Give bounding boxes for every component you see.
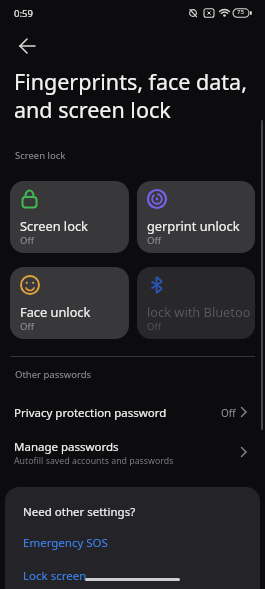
staticText: Privacy protection password [14, 405, 167, 421]
button[interactable] [10, 34, 46, 60]
button[interactable]: gerprint unlock [137, 181, 255, 253]
staticText: Screen lock [20, 217, 88, 234]
button[interactable]: Lock screen [5, 565, 205, 587]
staticText: 75 [237, 8, 244, 16]
staticText: Other passwords [15, 368, 92, 381]
staticText: Off [221, 406, 236, 420]
staticText: Emergency SOS [23, 535, 108, 551]
staticText: Off [20, 320, 34, 333]
button[interactable]: Privacy protection password [0, 397, 265, 427]
staticText: lock with Bluetoo [147, 303, 251, 320]
staticText: 0:59 [14, 7, 33, 20]
staticText: Screen lock [15, 149, 66, 162]
staticText: Off [147, 234, 161, 247]
button[interactable]: Face unlock [10, 267, 129, 339]
staticText: Face unlock [20, 303, 91, 320]
staticText: Autofill saved accounts and passwords [14, 455, 174, 467]
button[interactable]: Manage passwords [0, 432, 265, 474]
staticText: gerprint unlock [147, 217, 240, 234]
staticText: Off [20, 234, 34, 247]
staticText: Manage passwords [14, 439, 119, 455]
button[interactable]: Emergency SOS [5, 532, 205, 554]
staticText: Lock screen [23, 568, 87, 584]
button[interactable]: Screen lock [10, 181, 129, 253]
button[interactable]: lock with Bluetoo [137, 267, 255, 339]
staticText: Need other settings? [23, 504, 136, 520]
staticText: Off [147, 320, 161, 333]
staticText: Fingerprints, face data, and screen lock [14, 67, 247, 124]
